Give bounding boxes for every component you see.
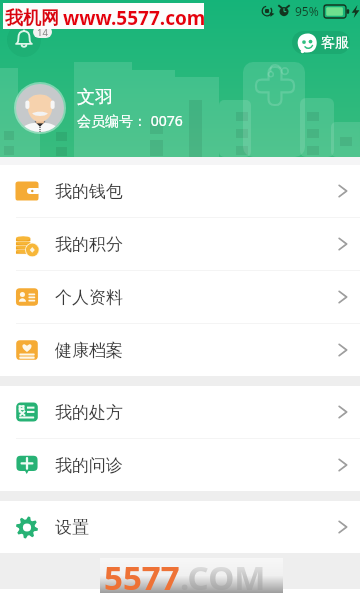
staticText: .COM [180,555,266,590]
staticText: 95% [295,3,319,19]
button[interactable]: 我的问诊 [0,439,360,491]
staticText: 我的处方 [55,402,123,423]
button[interactable]: 我的处方 [0,386,360,438]
button[interactable]: Notifications [7,23,41,57]
button[interactable]: 健康档案 [0,324,360,376]
staticText: 我的钱包 [55,181,123,202]
button[interactable]: 设置 [0,501,360,553]
staticText: 我的问诊 [55,455,123,476]
staticText: 我机网 [5,7,59,30]
staticText: 个人资料 [55,287,123,308]
staticText: 中国电信 [5,4,49,18]
staticText: 健康档案 [55,340,123,361]
button[interactable]: 我的钱包 [0,165,360,217]
button[interactable]: 个人资料 [0,271,360,323]
staticText: 会员编号： 0076 [77,111,183,130]
button[interactable]: 我的积分 [0,218,360,270]
staticText: 5577 [104,555,180,590]
staticText: 14 [37,26,48,38]
staticText: www.5577.com [63,5,206,31]
staticText: 客服 [321,34,349,52]
staticText: 我的积分 [55,234,123,255]
staticText: 设置 [55,517,89,538]
button[interactable] [292,31,350,54]
staticText: 文羽 [77,86,113,109]
